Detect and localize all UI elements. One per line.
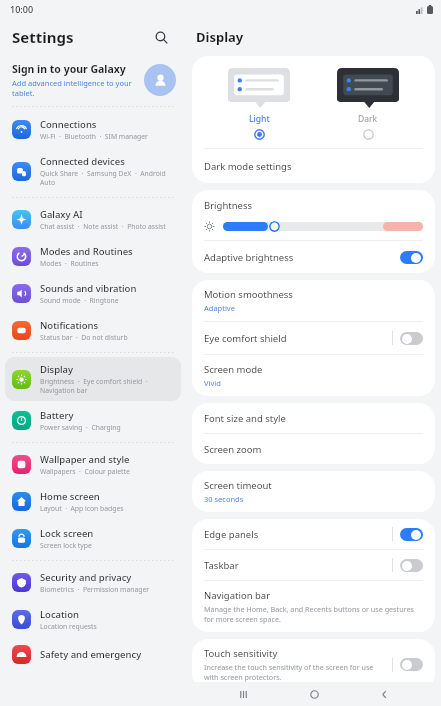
button[interactable]: Safety and emergency <box>5 639 181 670</box>
button[interactable]: Modes and Routines <box>5 239 181 274</box>
staticText: Home screen <box>40 490 100 503</box>
button[interactable]: Touch sensitivity <box>400 658 423 671</box>
staticText: Screen lock type <box>40 541 92 550</box>
staticText: Display <box>40 363 74 376</box>
staticText: Notifications <box>40 319 99 332</box>
staticText: Dark mode settings <box>204 160 292 173</box>
staticText: Wallpapers · Colour palette <box>40 467 130 476</box>
button[interactable]: Connected devices <box>5 149 181 193</box>
staticText: Increase the touch sensitivity of the sc… <box>204 662 384 682</box>
staticText: Brightness <box>204 199 253 212</box>
staticText: Connections <box>40 118 97 131</box>
button[interactable]: Wallpaper and style <box>5 447 181 482</box>
button[interactable]: Eye comfort shield <box>192 322 435 354</box>
staticText: Safety and emergency <box>40 648 142 661</box>
staticText: 10:00 <box>10 3 34 15</box>
button[interactable]: Recents <box>230 682 256 706</box>
staticText: Location <box>40 608 79 621</box>
staticText: Font size and style <box>204 412 286 425</box>
staticText: Quick Share · Samsung DeX · Android Auto <box>40 169 173 187</box>
staticText: Adaptive <box>204 303 235 313</box>
staticText: Taskbar <box>204 559 239 572</box>
staticText: Brightness · Eye comfort shield · Naviga… <box>40 377 173 395</box>
staticText: Motion smoothness <box>204 288 293 301</box>
staticText: Navigation bar <box>204 589 271 602</box>
staticText: Display <box>196 28 244 46</box>
staticText: Galaxy AI <box>40 208 83 221</box>
staticText: Sounds and vibration <box>40 282 137 295</box>
button[interactable]: Dark <box>327 66 409 142</box>
staticText: Security and privacy <box>40 571 132 584</box>
button[interactable]: Galaxy AI <box>5 202 181 237</box>
staticText: Modes · Routines <box>40 259 99 268</box>
staticText: Sign in to your Galaxy <box>12 62 126 76</box>
staticText: Screen mode <box>204 363 263 376</box>
button[interactable]: Lock screen <box>5 521 181 556</box>
staticText: Dark <box>358 113 378 125</box>
button[interactable]: Connections <box>5 112 181 147</box>
staticText: Wallpaper and style <box>40 453 130 466</box>
button[interactable]: Screen zoom <box>192 434 435 464</box>
button[interactable]: Search settings <box>148 24 174 50</box>
staticText: Power saving · Charging <box>40 423 121 432</box>
staticText: Touch sensitivity <box>204 647 278 660</box>
staticText: Battery <box>40 409 74 422</box>
staticText: Biometrics · Permission manager <box>40 585 150 594</box>
button[interactable]: Touch sensitivity <box>192 639 435 682</box>
staticText: Status bar · Do not disturb <box>40 333 128 342</box>
button[interactable]: Battery <box>5 403 181 438</box>
staticText: Location requests <box>40 622 97 631</box>
button[interactable]: Taskbar <box>192 550 435 580</box>
button[interactable]: Taskbar <box>400 559 423 572</box>
button[interactable]: Edge panels <box>192 519 435 549</box>
button[interactable]: Back <box>371 682 397 706</box>
button[interactable]: Sign in to your Galaxy <box>12 62 176 98</box>
staticText: Adaptive brightness <box>204 251 294 264</box>
staticText: Edge panels <box>204 528 259 541</box>
staticText: Screen zoom <box>204 443 262 456</box>
staticText: Settings <box>12 27 148 47</box>
staticText: Light <box>249 113 270 125</box>
staticText: 30 seconds <box>204 494 244 504</box>
button[interactable]: Screen mode <box>192 355 435 396</box>
staticText: Sound mode · Ringtone <box>40 296 119 305</box>
button[interactable]: Sounds and vibration <box>5 276 181 311</box>
staticText: Vivid <box>204 378 221 388</box>
button[interactable]: Screen timeout <box>192 471 435 512</box>
staticText: Connected devices <box>40 155 125 168</box>
button[interactable]: Light <box>218 66 300 142</box>
button[interactable]: Security and privacy <box>5 565 181 600</box>
staticText: Wi-Fi · Bluetooth · SIM manager <box>40 132 148 141</box>
button[interactable]: Home screen <box>5 484 181 519</box>
staticText: Screen timeout <box>204 479 272 492</box>
button[interactable]: Eye comfort shield <box>400 332 423 345</box>
button[interactable]: Motion smoothness <box>192 280 435 321</box>
button[interactable]: Dark mode settings <box>192 149 435 183</box>
button[interactable]: Adaptive brightness <box>192 241 435 273</box>
button[interactable]: Display <box>5 357 181 401</box>
button[interactable]: Navigation bar <box>192 581 435 632</box>
staticText: Add advanced intelligence to your tablet… <box>12 78 138 98</box>
staticText: Eye comfort shield <box>204 332 287 345</box>
staticText: Chat assist · Note assist · Photo assist <box>40 222 166 231</box>
staticText: Lock screen <box>40 527 94 540</box>
staticText: Modes and Routines <box>40 245 133 258</box>
staticText: Layout · App icon badges <box>40 504 124 513</box>
button[interactable]: Edge panels <box>400 528 423 541</box>
button[interactable]: Adaptive brightness <box>400 251 423 264</box>
button[interactable]: Home <box>301 682 327 706</box>
button[interactable]: Font size and style <box>192 403 435 433</box>
button[interactable]: Notifications <box>5 313 181 348</box>
staticText: Manage the Home, Back, and Recents butto… <box>204 604 423 624</box>
button[interactable] <box>223 220 423 232</box>
button[interactable]: Location <box>5 602 181 637</box>
